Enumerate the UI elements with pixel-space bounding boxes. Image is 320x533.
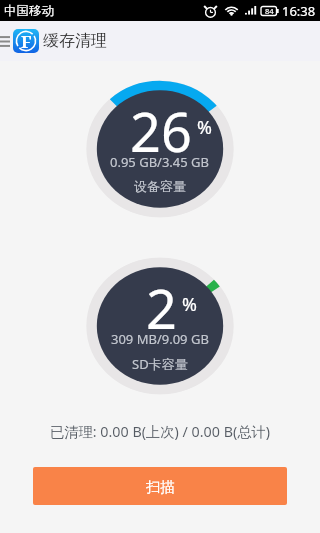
button[interactable]: 扫描 <box>33 467 287 505</box>
staticText: 309 MB/9.09 GB <box>111 330 209 348</box>
staticText: SD卡容量 <box>132 355 188 373</box>
staticText: F <box>21 30 32 53</box>
staticText: 中国移动 <box>4 3 54 19</box>
staticText: 扫描 <box>146 478 175 496</box>
staticText: 缓存清理 <box>43 31 107 51</box>
button[interactable]: Menu <box>0 35 10 48</box>
staticText: 84 <box>265 6 274 16</box>
staticText: 0.95 GB/3.45 GB <box>110 153 210 171</box>
staticText: % <box>197 115 212 140</box>
staticText: 26 <box>130 94 192 168</box>
staticText: 2 <box>146 271 177 345</box>
staticText: 16:38 <box>282 2 316 20</box>
staticText: 设备容量 <box>134 178 186 194</box>
staticText: 已清理: 0.00 B(上次) / 0.00 B(总计) <box>0 422 320 442</box>
staticText: % <box>182 292 197 317</box>
